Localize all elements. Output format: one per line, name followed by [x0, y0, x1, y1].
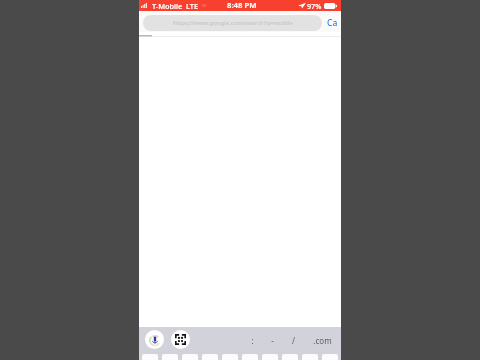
button[interactable]: https://www.google.com/search?q=mobile	[143, 15, 322, 31]
button[interactable]: Google Lens	[171, 330, 190, 349]
button[interactable]	[182, 354, 198, 360]
staticText: Cancel	[327, 17, 341, 29]
button[interactable]: .com	[311, 330, 333, 350]
button[interactable]	[142, 354, 158, 360]
staticText: https://www.google.com/search?q=mobile	[173, 19, 293, 27]
button[interactable]: /	[282, 330, 304, 350]
staticText: 97%	[307, 1, 322, 11]
staticText: T-Mobile	[152, 1, 183, 11]
button[interactable]	[202, 354, 218, 360]
button[interactable]: Voice search	[145, 330, 164, 349]
button[interactable]: -	[261, 330, 283, 350]
button[interactable]: :	[241, 330, 263, 350]
staticText: LTE	[186, 1, 199, 11]
button[interactable]: Cancel	[327, 17, 341, 29]
staticText: .com	[313, 335, 332, 346]
button[interactable]	[162, 354, 178, 360]
staticText: :	[251, 335, 254, 346]
button[interactable]	[282, 354, 298, 360]
button[interactable]	[262, 354, 278, 360]
button[interactable]	[222, 354, 238, 360]
staticText: -	[271, 335, 274, 346]
staticText: /	[292, 335, 295, 346]
button[interactable]	[322, 354, 338, 360]
staticText: 8:48 PM	[227, 0, 257, 11]
button[interactable]	[242, 354, 258, 360]
button[interactable]	[302, 354, 318, 360]
